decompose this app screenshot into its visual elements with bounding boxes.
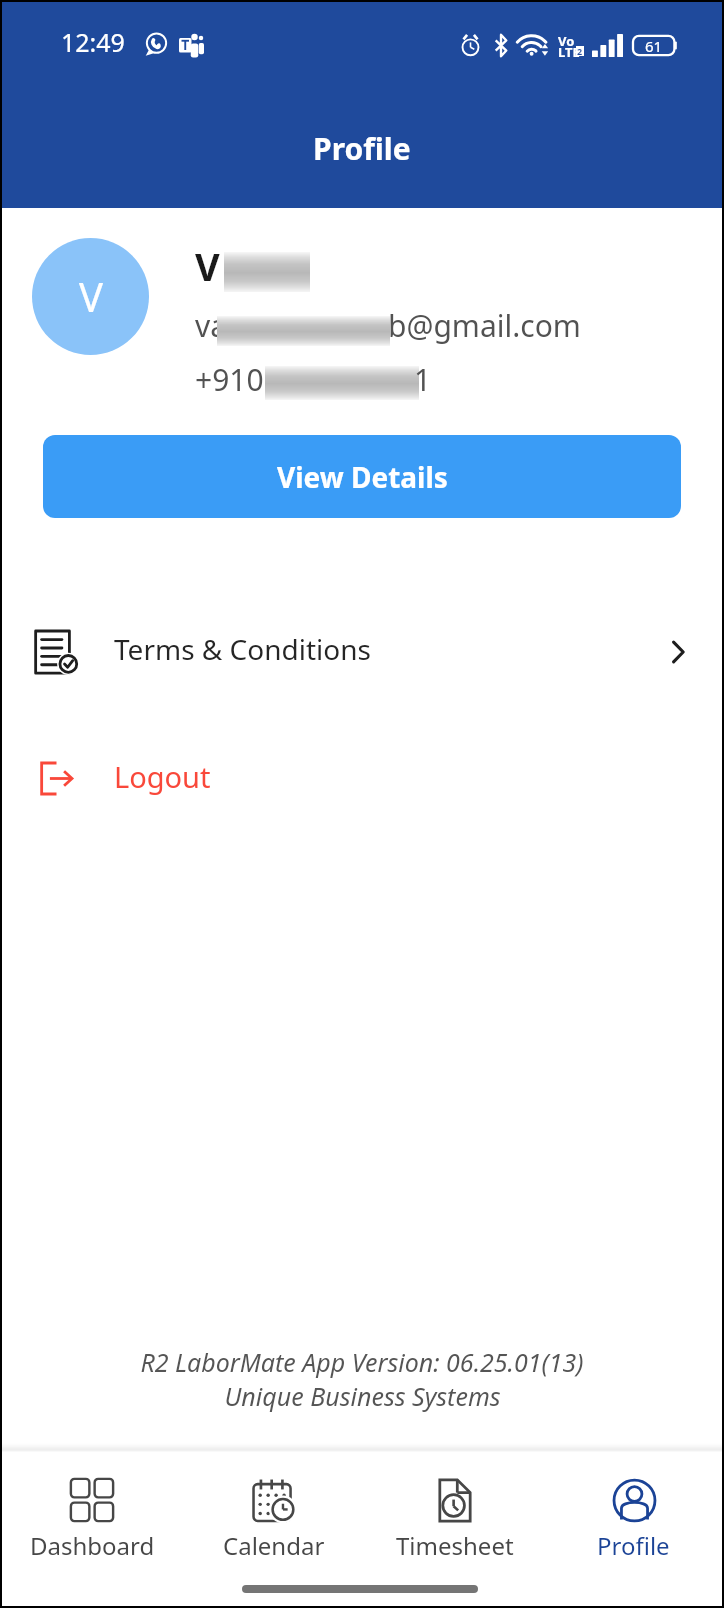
staticText: +910 (195, 359, 264, 400)
button[interactable]: Profile picture (32, 238, 149, 355)
staticText: R2 LaborMate App Version: 06.25.01(13) (140, 1345, 584, 1379)
staticText: Timesheet (396, 1529, 514, 1562)
staticText: LTE (558, 43, 580, 61)
staticText: Profile (313, 128, 411, 169)
staticText: 1 (414, 359, 432, 400)
button[interactable]: Logout (2, 742, 722, 810)
button[interactable]: Timesheet (364, 1452, 545, 1562)
button[interactable]: Calendar (183, 1452, 364, 1562)
staticText: Terms & Conditions (114, 630, 371, 668)
staticText: 12:49 (61, 25, 125, 59)
other: Open Terms and Conditions (665, 639, 691, 665)
staticText: V (195, 240, 220, 292)
staticText: va (195, 305, 228, 346)
staticText: 61 (645, 36, 663, 56)
button[interactable]: Profile (545, 1452, 722, 1562)
staticText: Unique Business Systems (224, 1379, 501, 1413)
staticText: Dashboard (30, 1529, 155, 1562)
button[interactable]: Dashboard (2, 1452, 183, 1562)
staticText: 2 (577, 45, 583, 55)
staticText: Logout (114, 757, 211, 796)
staticText: V (79, 269, 103, 323)
staticText: Calendar (223, 1529, 325, 1562)
staticText: Profile (597, 1529, 670, 1562)
staticText: View Details (277, 458, 448, 496)
button[interactable]: View Details (43, 435, 681, 518)
button[interactable]: Terms & Conditions (2, 613, 722, 685)
staticText: Vo (558, 32, 575, 50)
staticText: b@gmail.com (388, 305, 581, 346)
